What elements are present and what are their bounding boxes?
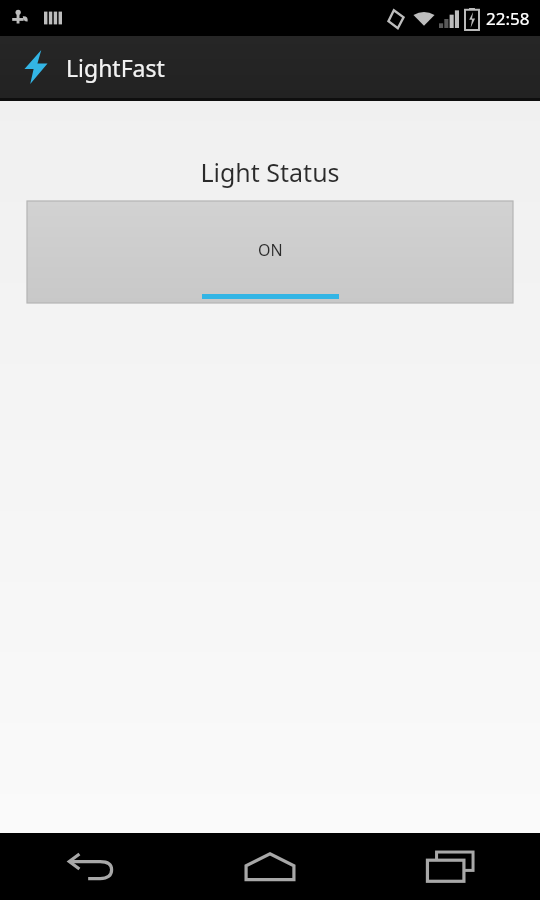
staticText: Light Status [200, 155, 340, 189]
button[interactable]: Home [180, 833, 360, 900]
staticText: LightFast [66, 52, 165, 83]
staticText: ON [258, 239, 283, 261]
staticText: 22:58 [486, 7, 530, 30]
button[interactable]: Recent apps [360, 833, 540, 900]
button[interactable]: Back [0, 833, 180, 900]
button[interactable]: ON [27, 201, 513, 303]
